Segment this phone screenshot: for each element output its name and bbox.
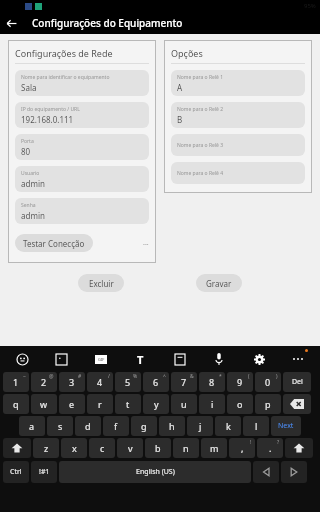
button[interactable]: 3 xyxy=(59,372,85,392)
button[interactable]: h xyxy=(159,416,185,436)
staticText: ... xyxy=(143,238,149,248)
button[interactable]: g xyxy=(131,416,157,436)
button[interactable]: 6 xyxy=(143,372,169,392)
button[interactable]: n xyxy=(173,438,199,458)
button[interactable]: 4 xyxy=(87,372,113,392)
staticText: T xyxy=(137,352,144,367)
staticText: Opções xyxy=(171,47,203,59)
staticText: % xyxy=(133,373,138,380)
button[interactable]: Emoji xyxy=(12,349,32,369)
staticText: q xyxy=(13,398,19,410)
button[interactable]: Usuario xyxy=(15,166,149,192)
button[interactable]: t xyxy=(115,394,141,414)
staticText: z xyxy=(44,442,49,454)
button[interactable]: Nome para o Relê 3 xyxy=(171,134,305,156)
button[interactable]: r xyxy=(87,394,113,414)
button[interactable]: y xyxy=(143,394,169,414)
button[interactable]: Settings xyxy=(249,349,269,369)
button[interactable]: Clipboard xyxy=(170,349,190,369)
button[interactable]: 2 xyxy=(31,372,57,392)
button[interactable]: Nome para o Relê 1 xyxy=(171,70,305,96)
staticText: !#1 xyxy=(39,467,50,477)
button[interactable]: right xyxy=(281,461,307,483)
staticText: Testar Conecção xyxy=(23,238,85,249)
button[interactable]: v xyxy=(117,438,143,458)
button[interactable]: Nome para identificar o equipamento xyxy=(15,70,149,96)
button[interactable]: k xyxy=(215,416,241,436)
staticText: r xyxy=(98,398,102,410)
button[interactable]: Gravar xyxy=(196,274,242,292)
button[interactable]: Porta xyxy=(15,134,149,160)
staticText: Nome para o Relê 2 xyxy=(177,106,224,113)
button[interactable]: p xyxy=(255,394,281,414)
staticText: ^ xyxy=(163,373,166,380)
button[interactable]: backspace xyxy=(283,394,311,414)
button[interactable]: Translate xyxy=(130,349,150,369)
button[interactable]: c xyxy=(89,438,115,458)
button[interactable]: q xyxy=(3,394,29,414)
button[interactable]: Voice input xyxy=(209,349,229,369)
button[interactable]: left xyxy=(253,461,279,483)
staticText: 6 xyxy=(153,376,159,388)
button[interactable]: !#1 xyxy=(31,461,57,483)
staticText: 0 xyxy=(265,376,271,388)
button[interactable]: More options xyxy=(288,349,308,369)
button[interactable]: . xyxy=(257,438,283,458)
button[interactable]: GIF xyxy=(91,349,111,369)
button[interactable]: Back xyxy=(0,12,22,34)
button[interactable]: 7 xyxy=(171,372,197,392)
staticText: o xyxy=(237,398,243,410)
button[interactable]: Excluir xyxy=(78,274,124,292)
button[interactable]: Nome para o Relê 4 xyxy=(171,162,305,184)
button[interactable]: d xyxy=(75,416,101,436)
button[interactable]: 5 xyxy=(115,372,141,392)
button[interactable]: Ctrl xyxy=(3,461,29,483)
staticText: , xyxy=(241,442,244,454)
button[interactable]: j xyxy=(187,416,213,436)
button[interactable]: Stickers xyxy=(51,349,71,369)
button[interactable]: IP do equipamento / URL xyxy=(15,102,149,128)
button[interactable]: 1 xyxy=(3,372,29,392)
button[interactable]: Testar Conecção xyxy=(15,234,93,252)
button[interactable]: o xyxy=(227,394,253,414)
button[interactable]: s xyxy=(47,416,73,436)
button[interactable]: , xyxy=(229,438,255,458)
staticText: h xyxy=(169,420,175,432)
button[interactable]: shift xyxy=(285,438,313,458)
staticText: g xyxy=(141,420,147,432)
staticText: Del xyxy=(292,377,303,387)
button[interactable]: shift xyxy=(3,438,31,458)
button[interactable]: z xyxy=(33,438,59,458)
staticText: . xyxy=(269,442,272,454)
staticText: ? xyxy=(277,439,280,446)
button[interactable]: x xyxy=(61,438,87,458)
button[interactable]: l xyxy=(243,416,269,436)
button[interactable]: 0 xyxy=(255,372,281,392)
button[interactable]: i xyxy=(199,394,225,414)
button[interactable]: e xyxy=(59,394,85,414)
staticText: Nome para o Relê 1 xyxy=(177,74,224,81)
button[interactable]: f xyxy=(103,416,129,436)
button[interactable]: Nome para o Relê 2 xyxy=(171,102,305,128)
staticText: Nome para o Relê 3 xyxy=(177,142,224,149)
staticText: m xyxy=(210,442,219,454)
button[interactable]: b xyxy=(145,438,171,458)
button[interactable]: Next xyxy=(271,416,301,436)
button[interactable]: m xyxy=(201,438,227,458)
button[interactable]: Del xyxy=(283,372,311,392)
button[interactable]: a xyxy=(19,416,45,436)
button[interactable]: u xyxy=(171,394,197,414)
button[interactable]: English (US) xyxy=(59,461,251,483)
staticText: @ xyxy=(49,373,54,380)
button[interactable]: w xyxy=(31,394,57,414)
staticText: l xyxy=(255,420,258,432)
staticText: Configurações do Equipamento xyxy=(32,16,183,30)
button[interactable]: 9 xyxy=(227,372,253,392)
staticText: ) xyxy=(276,373,278,380)
staticText: 7 xyxy=(181,376,187,388)
button[interactable]: 8 xyxy=(199,372,225,392)
staticText: i xyxy=(211,398,214,410)
staticText: Next xyxy=(278,421,294,431)
button[interactable]: Senha xyxy=(15,198,149,224)
staticText: b xyxy=(155,442,161,454)
